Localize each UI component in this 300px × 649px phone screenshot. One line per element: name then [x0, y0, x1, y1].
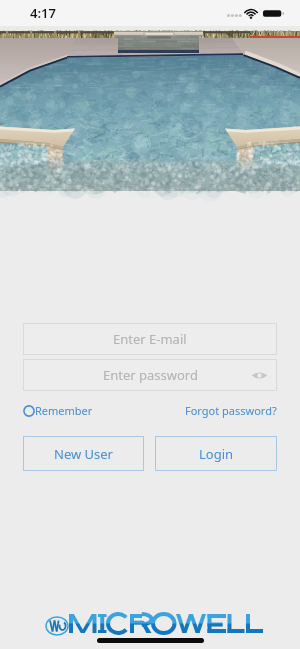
button[interactable]: Forgot password?: [185, 403, 277, 418]
staticText: New User: [54, 445, 113, 463]
button[interactable]: Show password: [248, 364, 270, 386]
staticText: Enter E-mail: [113, 330, 187, 348]
staticText: Enter password: [103, 366, 198, 384]
button[interactable]: Remember: [23, 403, 93, 418]
button[interactable]: New User: [23, 436, 144, 471]
button[interactable]: Enter E-mail: [23, 323, 277, 355]
staticText: Login: [199, 445, 234, 463]
staticText: 4:17: [30, 4, 56, 22]
staticText: Remember: [35, 403, 93, 418]
button[interactable]: Login: [155, 436, 277, 471]
button[interactable]: Enter password: [23, 359, 277, 391]
